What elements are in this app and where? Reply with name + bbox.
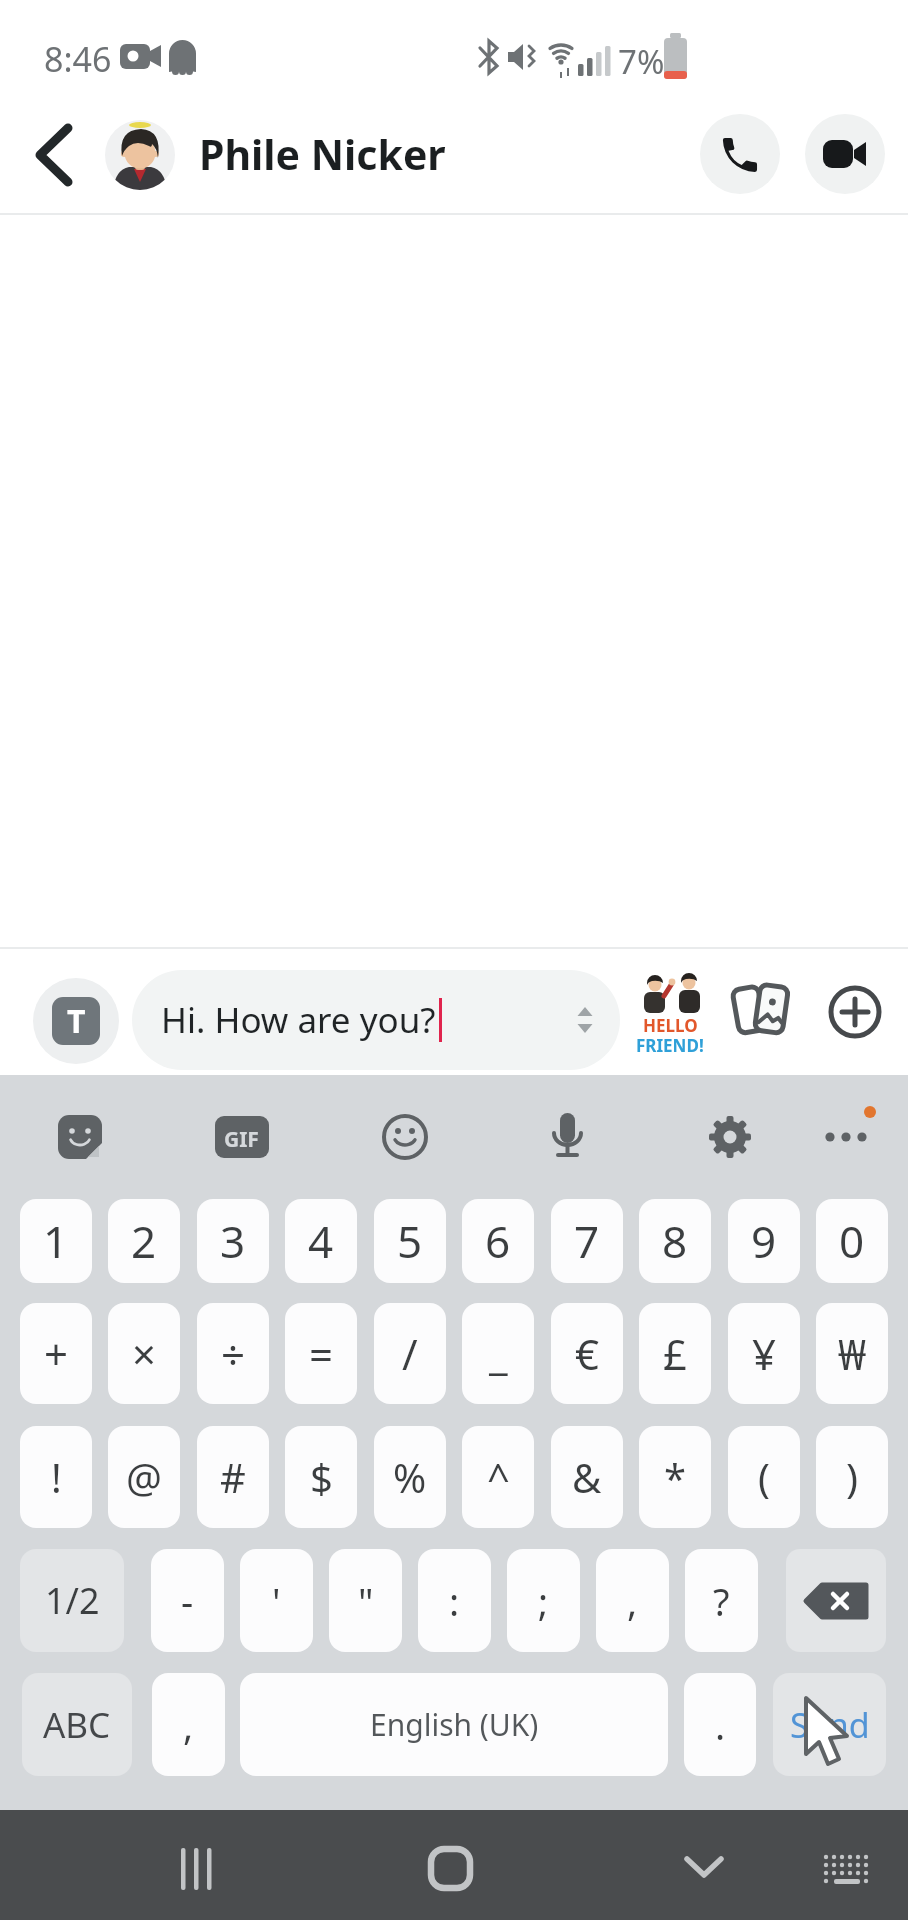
button[interactable]: £ (639, 1303, 711, 1404)
button[interactable]: 9 (728, 1199, 800, 1283)
staticText: $ (310, 1450, 333, 1504)
staticText: £ (663, 1325, 688, 1382)
staticText: ^ (487, 1450, 510, 1504)
button[interactable] (826, 983, 884, 1041)
staticText: Send (790, 1702, 870, 1748)
staticText: 6 (485, 1211, 511, 1271)
button[interactable]: - (151, 1549, 224, 1652)
button[interactable]: ) (816, 1426, 888, 1528)
staticText: * (664, 1450, 687, 1504)
button[interactable] (706, 1113, 756, 1163)
button[interactable]: & (551, 1426, 623, 1528)
button[interactable]: ! (20, 1426, 92, 1528)
staticText: , (183, 1699, 194, 1751)
button[interactable]: , (152, 1673, 225, 1776)
button[interactable] (150, 1830, 250, 1900)
button[interactable]: % (374, 1426, 446, 1528)
staticText: 7 (574, 1211, 600, 1271)
button[interactable] (400, 1830, 500, 1900)
staticText: ' (272, 1575, 281, 1627)
button[interactable] (56, 1113, 106, 1163)
staticText: / (402, 1325, 418, 1382)
button[interactable]: ? (685, 1549, 758, 1652)
button[interactable]: 8 (639, 1199, 711, 1283)
button[interactable]: _ (462, 1303, 534, 1404)
button[interactable]: : (418, 1549, 491, 1652)
staticText: " (358, 1575, 374, 1627)
button[interactable]: = (285, 1303, 357, 1404)
staticText: ₩ (838, 1325, 867, 1382)
button[interactable] (215, 1113, 265, 1163)
staticText: GIF (224, 1125, 259, 1154)
staticText: ABC (43, 1701, 111, 1749)
staticText: 9 (751, 1211, 777, 1271)
button[interactable]: / (374, 1303, 446, 1404)
button[interactable]: . (684, 1673, 756, 1776)
button[interactable]: ( (728, 1426, 800, 1528)
button[interactable] (28, 125, 80, 185)
staticText: 8:46 (44, 36, 112, 82)
staticText: 1 (43, 1211, 69, 1271)
button[interactable]: ^ (462, 1426, 534, 1528)
button[interactable]: 5 (374, 1199, 446, 1283)
staticText: 8 (662, 1211, 688, 1271)
staticText: 0 (839, 1211, 865, 1271)
button[interactable]: 3 (197, 1199, 269, 1283)
staticText: T (67, 999, 86, 1043)
staticText: ; (538, 1575, 549, 1627)
staticText: & (572, 1450, 602, 1504)
button[interactable]: # (197, 1426, 269, 1528)
staticText: Hi. How are you? (161, 996, 436, 1044)
staticText: ! (51, 1450, 62, 1504)
button[interactable]: 4 (285, 1199, 357, 1283)
button[interactable]: @ (108, 1426, 180, 1528)
button[interactable]: + (20, 1303, 92, 1404)
staticText: 4 (308, 1211, 334, 1271)
button[interactable]: ; (507, 1549, 580, 1652)
button[interactable]: ¥ (728, 1303, 800, 1404)
staticText: 5 (397, 1211, 423, 1271)
button[interactable] (105, 120, 175, 190)
button[interactable]: Send (773, 1673, 886, 1776)
button[interactable] (730, 982, 794, 1042)
staticText: # (220, 1450, 246, 1504)
button[interactable]: 1/2 (20, 1549, 124, 1652)
staticText: ( (758, 1450, 770, 1504)
button[interactable]: ₩ (816, 1303, 888, 1404)
button[interactable]: HELLO (636, 968, 710, 1056)
button[interactable] (805, 114, 885, 194)
button[interactable] (818, 1113, 868, 1163)
staticText: FRIEND! (636, 1034, 704, 1057)
staticText: : (449, 1575, 460, 1627)
staticText: English (UK) (370, 1704, 539, 1745)
button[interactable]: 0 (816, 1199, 888, 1283)
button[interactable]: 6 (462, 1199, 534, 1283)
button[interactable]: T (33, 978, 119, 1064)
button[interactable]: English (UK) (240, 1673, 668, 1776)
staticText: . (715, 1699, 726, 1751)
button[interactable] (544, 1113, 594, 1163)
button[interactable]: Hi. How are you? (132, 970, 620, 1070)
button[interactable]: ABC (22, 1673, 132, 1776)
button[interactable]: ' (240, 1549, 313, 1652)
button[interactable]: 2 (108, 1199, 180, 1283)
button[interactable]: * (639, 1426, 711, 1528)
staticText: = (309, 1325, 334, 1382)
button[interactable]: × (108, 1303, 180, 1404)
staticText: 3 (220, 1211, 246, 1271)
button[interactable]: 1 (20, 1199, 92, 1283)
button[interactable]: , (596, 1549, 669, 1652)
staticText: Phile Nicker (199, 126, 446, 182)
button[interactable] (660, 1830, 760, 1900)
staticText: € (575, 1325, 600, 1382)
button[interactable]: " (329, 1549, 402, 1652)
button[interactable]: 7 (551, 1199, 623, 1283)
button[interactable] (800, 1830, 900, 1900)
button[interactable] (382, 1113, 432, 1163)
button[interactable] (786, 1549, 886, 1652)
button[interactable]: ÷ (197, 1303, 269, 1404)
button[interactable]: $ (285, 1426, 357, 1528)
button[interactable]: € (551, 1303, 623, 1404)
button[interactable] (700, 114, 780, 194)
staticText: _ (489, 1325, 508, 1382)
